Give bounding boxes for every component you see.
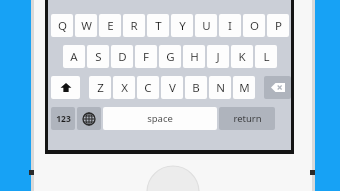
button[interactable]: M xyxy=(233,76,255,99)
button[interactable]: Shift xyxy=(51,76,80,99)
button[interactable]: W xyxy=(75,14,97,37)
button[interactable]: K xyxy=(231,45,253,68)
button[interactable]: V xyxy=(161,76,183,99)
button[interactable]: E xyxy=(99,14,121,37)
button[interactable]: H xyxy=(183,45,205,68)
button[interactable]: Switch keyboard xyxy=(77,107,101,130)
button[interactable]: space xyxy=(103,107,217,130)
staticText: Q xyxy=(58,18,67,34)
staticText: W xyxy=(81,18,92,34)
button[interactable]: 123 xyxy=(51,107,75,130)
staticText: D xyxy=(118,49,127,65)
button[interactable]: U xyxy=(195,14,217,37)
button[interactable]: D xyxy=(111,45,133,68)
staticText: F xyxy=(143,49,149,65)
button[interactable]: J xyxy=(207,45,229,68)
staticText: C xyxy=(144,80,152,96)
staticText: M xyxy=(239,80,250,96)
button[interactable]: Z xyxy=(89,76,111,99)
staticText: R xyxy=(130,18,138,34)
staticText: Z xyxy=(97,80,104,96)
staticText: I xyxy=(228,18,232,34)
button[interactable]: S xyxy=(87,45,109,68)
staticText: O xyxy=(250,18,259,34)
staticText: Y xyxy=(179,18,186,34)
staticText: S xyxy=(95,49,102,65)
staticText: K xyxy=(238,49,246,65)
staticText: P xyxy=(275,18,282,34)
staticText: space xyxy=(147,112,173,125)
button[interactable]: P xyxy=(267,14,289,37)
button[interactable]: A xyxy=(63,45,85,68)
staticText: G xyxy=(166,49,175,65)
staticText: H xyxy=(190,49,199,65)
staticText: X xyxy=(121,80,128,96)
button[interactable]: G xyxy=(159,45,181,68)
button[interactable]: Backspace xyxy=(264,76,291,99)
staticText: return xyxy=(233,112,262,125)
button[interactable]: C xyxy=(137,76,159,99)
staticText: L xyxy=(263,49,270,65)
button[interactable]: I xyxy=(219,14,241,37)
button[interactable]: R xyxy=(123,14,145,37)
staticText: U xyxy=(202,18,211,34)
button[interactable]: Y xyxy=(171,14,193,37)
button[interactable]: T xyxy=(147,14,169,37)
staticText: N xyxy=(216,80,225,96)
button[interactable]: B xyxy=(185,76,207,99)
staticText: E xyxy=(107,18,114,34)
button[interactable]: Q xyxy=(51,14,73,37)
button[interactable]: F xyxy=(135,45,157,68)
staticText: V xyxy=(169,80,176,96)
button[interactable]: X xyxy=(113,76,135,99)
button[interactable]: N xyxy=(209,76,231,99)
staticText: A xyxy=(70,49,78,65)
button[interactable]: return xyxy=(219,107,275,130)
button[interactable]: O xyxy=(243,14,265,37)
staticText: T xyxy=(155,18,162,34)
staticText: B xyxy=(192,80,200,96)
staticText: 123 xyxy=(56,113,71,125)
staticText: J xyxy=(216,49,220,65)
button[interactable]: L xyxy=(255,45,277,68)
